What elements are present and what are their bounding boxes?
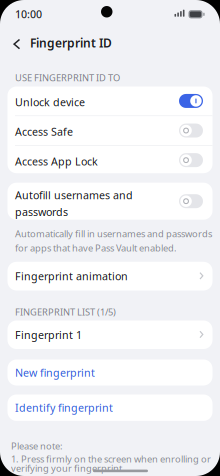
staticText: New fingerprint (15, 365, 95, 380)
staticText: verifying your fingerprint (11, 462, 122, 474)
staticText: Fingerprint 1 (15, 328, 82, 342)
staticText: 10:00 (15, 7, 42, 21)
button[interactable]: Fingerprint animation (7, 262, 212, 290)
staticText: Identify fingerprint (15, 401, 113, 415)
button[interactable]: Access App Lock (7, 146, 212, 175)
staticText: Fingerprint ID (30, 35, 112, 51)
staticText: Automatically fill in usernames and pass… (15, 227, 212, 240)
button[interactable]: Back (7, 33, 26, 55)
staticText: passwords (15, 205, 68, 219)
staticText: Unlock device (15, 95, 85, 109)
staticText: 1. Press firmly on the screen when enrol… (11, 453, 211, 465)
staticText: FINGERPRINT LIST (1/5) (15, 306, 116, 318)
button[interactable]: Fingerprint 1 (7, 320, 212, 349)
staticText: Access App Lock (15, 154, 98, 168)
staticText: Please note: (11, 440, 63, 452)
staticText: Access Safe (15, 125, 73, 139)
button[interactable]: Identify fingerprint (7, 394, 212, 421)
staticText: for apps that have Pass Vault enabled. (15, 242, 177, 254)
button[interactable]: Autofill usernames and (7, 183, 212, 220)
button[interactable]: Access Safe (7, 116, 212, 145)
staticText: Autofill usernames and (15, 188, 133, 202)
staticText: Fingerprint animation (15, 269, 128, 283)
staticText: USE FINGERPRINT ID TO (15, 71, 120, 84)
button[interactable]: New fingerprint (7, 359, 212, 385)
button[interactable]: Unlock device (7, 86, 212, 115)
